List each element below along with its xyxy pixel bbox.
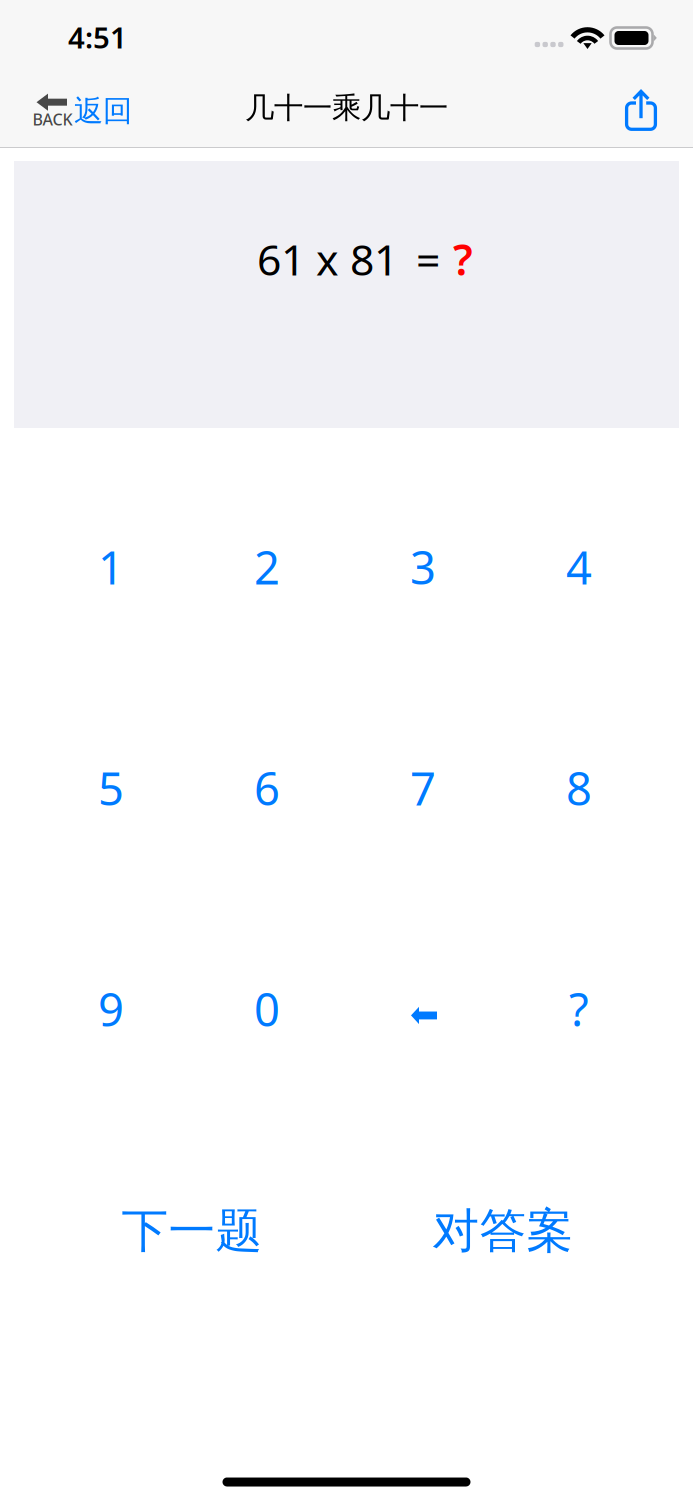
button[interactable]: Share [623,89,659,133]
button[interactable]: 7 [345,688,501,888]
staticText: 几十一乘几十一 [245,90,448,126]
button[interactable]: 1 [33,467,189,667]
button[interactable]: 6 [189,688,345,888]
staticText: 5 [98,758,124,818]
staticText: BACK [32,109,72,130]
button[interactable] [345,909,501,1109]
staticText: 0 [254,979,280,1039]
staticText: ? [453,231,473,287]
staticText: 4:51 [68,17,127,56]
button[interactable]: 4 [501,467,657,667]
button[interactable]: BACK [36,85,132,137]
staticText: 7 [410,758,436,818]
staticText: 61 x 81 [257,231,398,287]
staticText: ? [569,979,589,1039]
staticText: 返回 [74,93,132,129]
button[interactable]: 9 [33,909,189,1109]
button[interactable]: 下一题 [52,1176,332,1286]
staticText: 6 [254,758,280,818]
button[interactable]: 2 [189,467,345,667]
button[interactable]: ? [501,909,657,1109]
staticText: 下一题 [121,1202,262,1260]
button[interactable]: 3 [345,467,501,667]
staticText: 3 [410,537,436,597]
button[interactable]: 8 [501,688,657,888]
staticText: = [416,231,440,287]
staticText: 2 [254,537,280,597]
staticText: 对答案 [432,1202,573,1260]
staticText: 9 [98,979,124,1039]
staticText: 4 [566,537,592,597]
staticText: 8 [566,758,592,818]
button[interactable]: 对答案 [363,1176,643,1286]
button[interactable]: 5 [33,688,189,888]
staticText: 1 [98,537,124,597]
button[interactable]: 0 [189,909,345,1109]
